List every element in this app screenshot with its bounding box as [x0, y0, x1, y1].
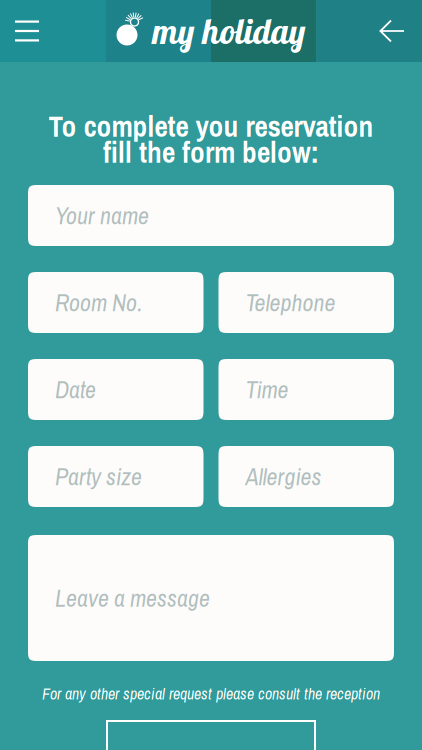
staticText: Party size	[55, 460, 142, 493]
staticText: my holiday	[152, 9, 305, 53]
button[interactable]: Date	[28, 359, 203, 420]
button[interactable]: Your name	[28, 185, 394, 246]
button[interactable]: Party size	[28, 446, 203, 507]
button[interactable]: Leave a message	[28, 535, 394, 661]
staticText: To complete you reservation	[48, 113, 373, 139]
button[interactable]: Room No.	[28, 272, 203, 333]
staticText: Telephone	[245, 286, 335, 319]
staticText: Room No.	[55, 286, 142, 319]
button[interactable]: Back	[367, 7, 422, 54]
button[interactable]: Telephone	[218, 272, 394, 333]
staticText: For any other special request please con…	[42, 683, 380, 705]
staticText: Your name	[55, 199, 149, 232]
button[interactable]: Menu	[0, 9, 51, 53]
staticText: fill the form below:	[103, 139, 319, 165]
staticText: Leave a message	[55, 582, 210, 614]
button[interactable]: Allergies	[218, 446, 394, 507]
staticText: Date	[55, 373, 96, 406]
button[interactable]: Make reservation	[106, 720, 316, 750]
staticText: Time	[245, 373, 288, 406]
button[interactable]: Time	[218, 359, 394, 420]
staticText: Allergies	[245, 460, 321, 493]
